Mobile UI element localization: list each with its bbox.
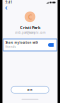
staticText: friends — [5, 45, 15, 49]
button[interactable]: Share my location with — [3, 39, 57, 51]
button[interactable]: Save — [11, 86, 49, 93]
staticText: cristi.park@example.com — [15, 31, 45, 34]
staticText: Share my location with — [5, 41, 38, 45]
button[interactable]: Back — [4, 5, 9, 11]
staticText: Cristi Park — [20, 25, 40, 30]
staticText: 9:41 — [5, 1, 12, 4]
staticText: C — [28, 12, 32, 21]
staticText: Save — [27, 88, 33, 91]
